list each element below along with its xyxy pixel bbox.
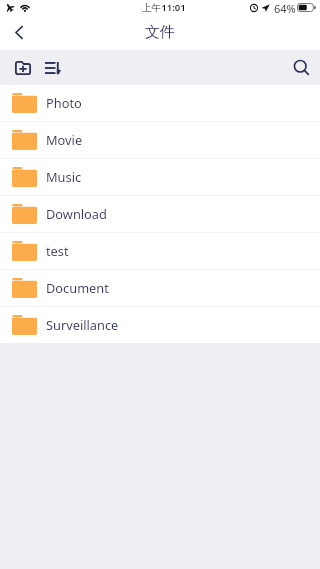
staticText: 上午11:01 [142,1,186,14]
staticText: Photo [46,94,82,111]
staticText: Download [46,205,107,222]
button[interactable]: New folder [11,56,34,79]
staticText: 64% [274,1,296,16]
staticText: test [46,242,69,259]
button[interactable]: Movie [0,122,320,158]
button[interactable]: test [0,233,320,269]
button[interactable]: Music [0,159,320,195]
button[interactable]: Download [0,196,320,232]
staticText: 文件 [145,23,175,42]
staticText: Surveillance [46,316,119,333]
staticText: Document [46,279,109,296]
button[interactable]: Document [0,270,320,306]
button[interactable]: Search [290,56,313,79]
button[interactable]: Surveillance [0,307,320,343]
button[interactable]: Photo [0,85,320,121]
button[interactable]: Sort [41,56,64,79]
staticText: Music [46,168,82,185]
staticText: Movie [46,131,83,148]
button[interactable]: Back [5,19,32,46]
